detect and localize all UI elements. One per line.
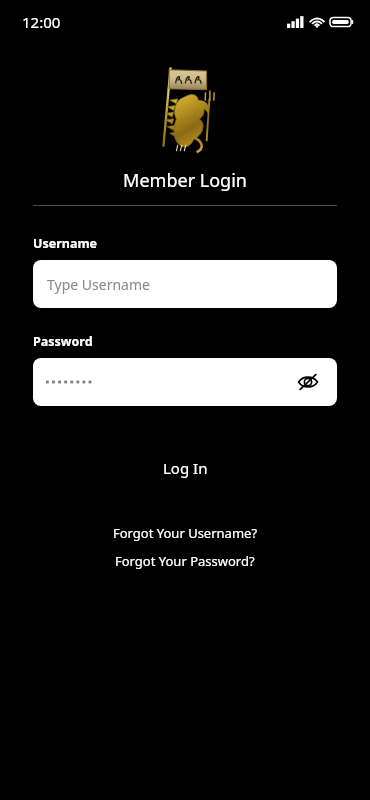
button[interactable]: Log In <box>0 446 370 490</box>
button[interactable]: Type Username <box>33 260 337 308</box>
staticText: Forgot Your Username? <box>113 524 258 542</box>
staticText: Log In <box>163 458 208 478</box>
button[interactable]: Forgot Your Username? <box>0 519 370 547</box>
staticText: 12:00 <box>22 12 61 32</box>
button[interactable]: Forgot Your Password? <box>0 547 370 575</box>
staticText: Username <box>33 235 98 252</box>
staticText: Password <box>33 333 93 350</box>
button[interactable]: Show password <box>33 358 337 406</box>
staticText: Member Login <box>0 168 370 193</box>
staticText: Forgot Your Password? <box>115 552 255 570</box>
button[interactable]: Show password <box>291 365 325 399</box>
staticText: Type Username <box>47 275 150 294</box>
